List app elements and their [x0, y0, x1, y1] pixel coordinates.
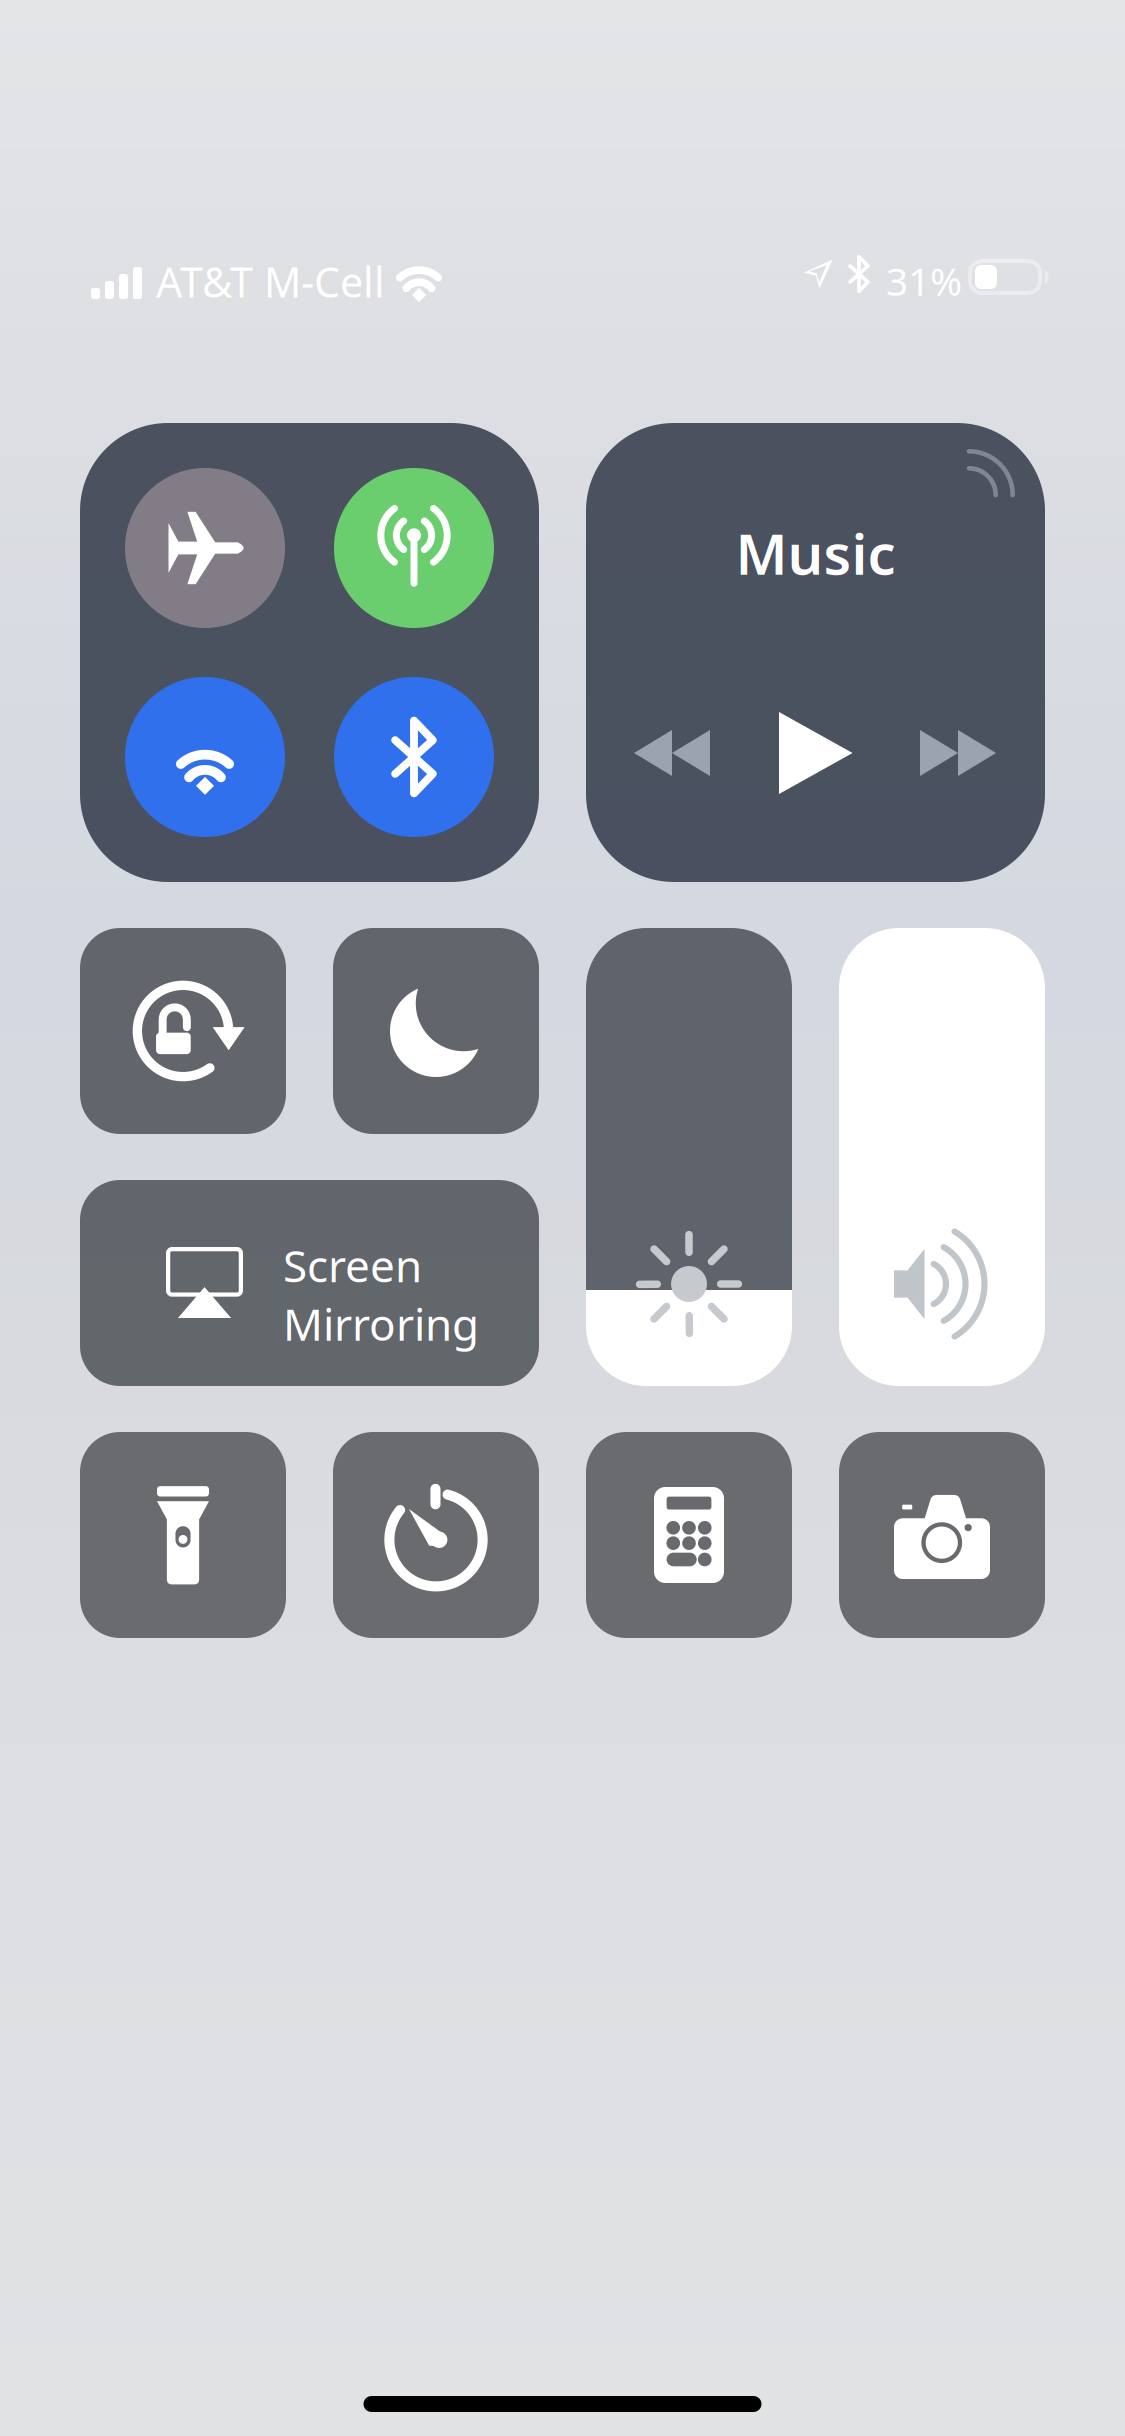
- staticText: 31%: [886, 255, 962, 306]
- button[interactable]: Do Not Disturb: [333, 928, 539, 1134]
- button[interactable]: Music: [586, 423, 1045, 882]
- button[interactable]: Bluetooth: [334, 677, 494, 837]
- staticText: AT&T M-Cell: [156, 254, 385, 309]
- button[interactable]: Wi-Fi: [125, 677, 285, 837]
- button[interactable]: Volume: [839, 928, 1045, 1386]
- button[interactable]: Timer: [333, 1432, 539, 1638]
- button[interactable]: Flashlight: [80, 1432, 286, 1638]
- button[interactable]: Brightness: [586, 928, 792, 1386]
- button[interactable]: Airplane Mode: [125, 468, 285, 628]
- staticText: Screen Mirroring: [283, 1236, 479, 1353]
- button[interactable]: Calculator: [586, 1432, 792, 1638]
- button[interactable]: Camera: [839, 1432, 1045, 1638]
- button[interactable]: Screen Mirroring: [80, 1180, 539, 1386]
- button[interactable]: Rotation Lock: [80, 928, 286, 1134]
- button[interactable]: Cellular Data: [334, 468, 494, 628]
- staticText: Music: [735, 516, 895, 590]
